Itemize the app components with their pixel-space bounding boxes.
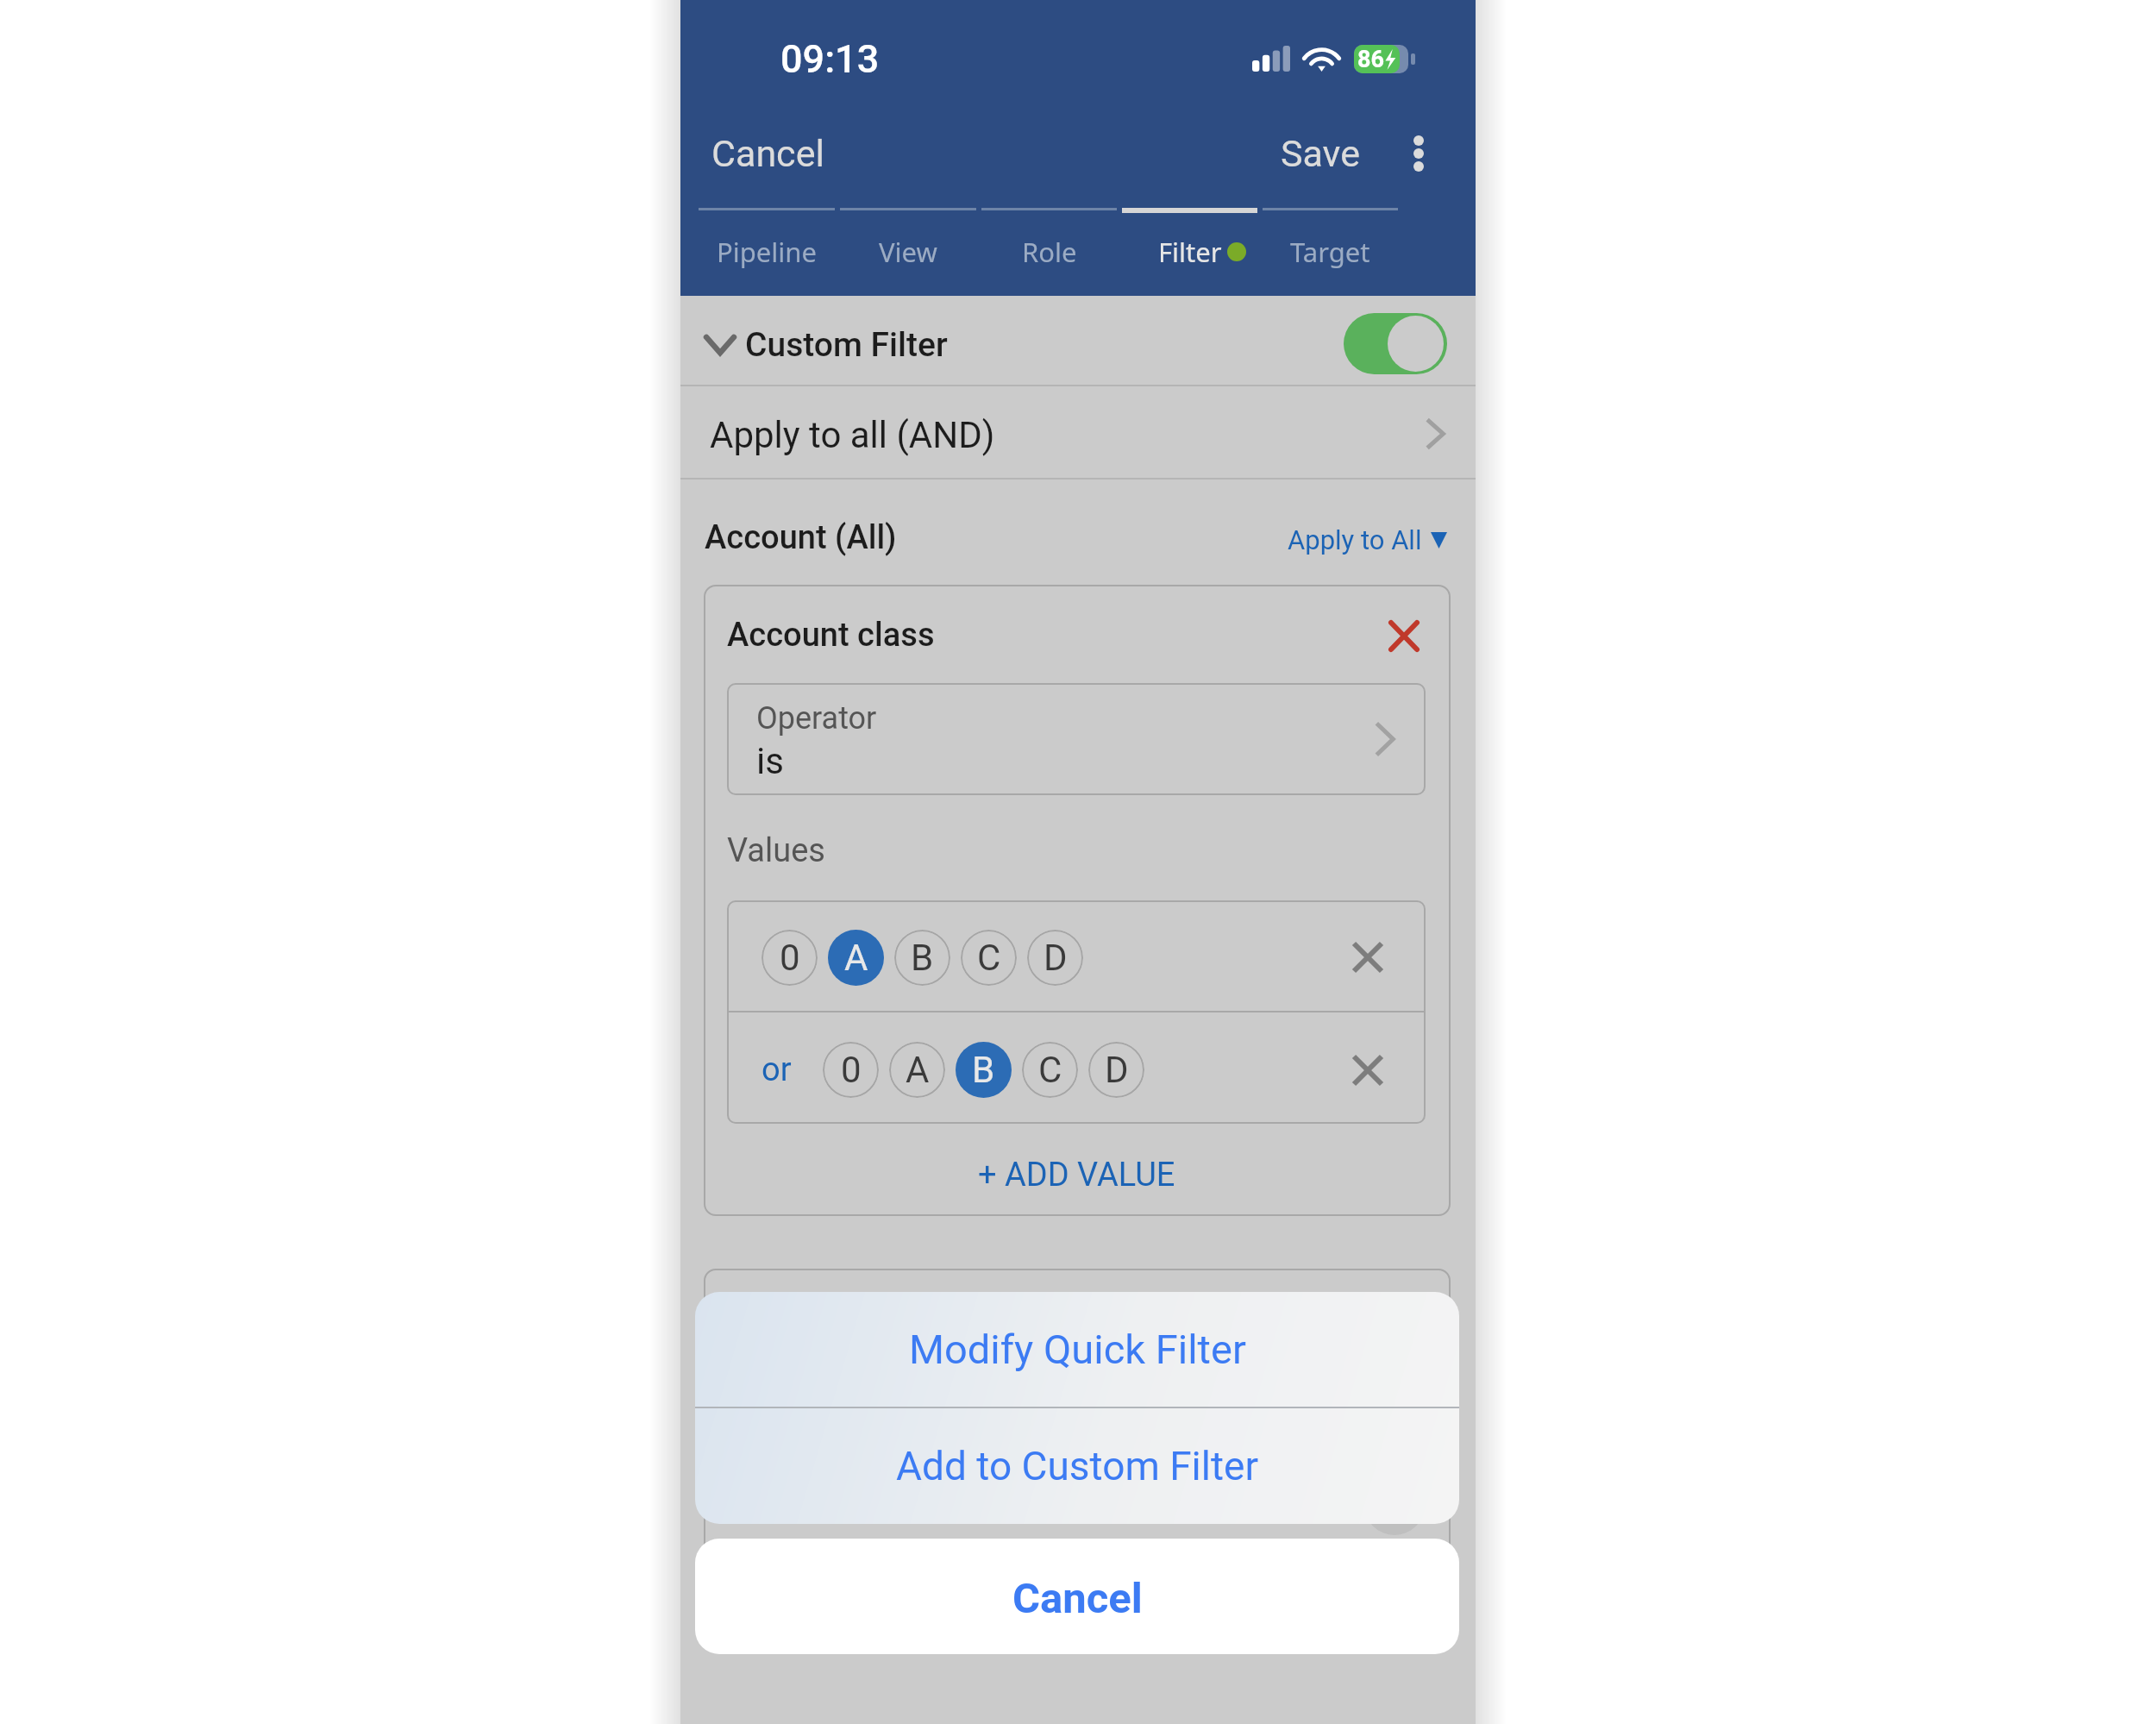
staticText: Account class	[727, 616, 935, 655]
staticText: is	[756, 740, 784, 782]
staticText: Filter	[1158, 234, 1222, 270]
staticText: 0	[780, 937, 800, 979]
button[interactable]: Apply to all (AND)	[680, 386, 1476, 478]
staticText: Modify Quick Filter	[909, 1326, 1246, 1373]
button[interactable]: Target	[1260, 213, 1401, 277]
button[interactable]: Custom Filter enabled	[1344, 313, 1447, 374]
staticText: Role	[1022, 234, 1077, 270]
button[interactable]: Account class B	[894, 930, 950, 986]
staticText: Pipeline	[717, 234, 817, 270]
staticText: Apply to all (AND)	[710, 414, 995, 456]
button[interactable]: Account class D	[1088, 1042, 1144, 1098]
staticText: B	[972, 1049, 995, 1091]
button[interactable]: Cancel	[680, 120, 843, 187]
button[interactable]: Account class C	[1022, 1042, 1078, 1098]
staticText: C	[977, 937, 1001, 979]
button[interactable]: Account class C	[961, 930, 1017, 986]
staticText: Values	[727, 831, 825, 870]
button[interactable]: Remove value	[1343, 1045, 1393, 1095]
staticText: View	[879, 234, 937, 270]
button[interactable]: Account class D	[1027, 930, 1083, 986]
button[interactable]: + ADD VALUE	[727, 1124, 1426, 1216]
button[interactable]: Account class B	[956, 1042, 1012, 1098]
staticText: 86	[1357, 46, 1384, 73]
button[interactable]: More options	[1386, 121, 1451, 186]
staticText: Apply to All	[1288, 524, 1422, 555]
staticText: 0	[841, 1049, 862, 1091]
staticText: or	[761, 1050, 792, 1089]
staticText: A	[906, 1049, 930, 1091]
staticText: Add to Custom Filter	[896, 1443, 1258, 1489]
staticText: Cancel	[711, 132, 824, 175]
staticText: A	[844, 937, 868, 979]
button[interactable]: Remove filter	[1376, 610, 1426, 660]
staticText: D	[1044, 937, 1068, 979]
button[interactable]: Custom Filter	[680, 296, 1476, 385]
button[interactable]: Filter	[1119, 213, 1260, 277]
staticText: Custom Filter	[745, 325, 948, 365]
button[interactable]: Account class A	[828, 930, 884, 986]
staticText: Operator	[756, 700, 877, 737]
button[interactable]: Add	[1364, 1475, 1425, 1535]
staticText: Account (All)	[705, 518, 897, 557]
button[interactable]: View	[837, 213, 979, 277]
button[interactable]: Apply to All	[1284, 513, 1451, 561]
staticText: B	[911, 937, 934, 979]
button[interactable]: Save	[1265, 120, 1386, 187]
button[interactable]: Account class 0	[761, 930, 818, 986]
button[interactable]: Modify Quick Filter	[695, 1292, 1459, 1407]
button[interactable]: Account class 0	[823, 1042, 879, 1098]
button[interactable]: Operator is	[727, 683, 1426, 795]
button[interactable]: Add to Custom Filter	[695, 1408, 1459, 1524]
staticText: Save	[1281, 132, 1360, 175]
button[interactable]: Remove value	[1343, 932, 1393, 982]
staticText: 09:13	[780, 36, 880, 82]
staticText: + ADD VALUE	[978, 1156, 1175, 1194]
button[interactable]: Cancel	[695, 1539, 1459, 1654]
staticText: Cancel	[1012, 1574, 1143, 1623]
staticText: C	[1038, 1049, 1062, 1091]
button[interactable]: Account class A	[889, 1042, 945, 1098]
staticText: Target	[1290, 234, 1370, 270]
staticText: D	[1105, 1049, 1129, 1091]
button[interactable]: Pipeline	[696, 213, 837, 277]
button[interactable]: Role	[979, 213, 1119, 277]
